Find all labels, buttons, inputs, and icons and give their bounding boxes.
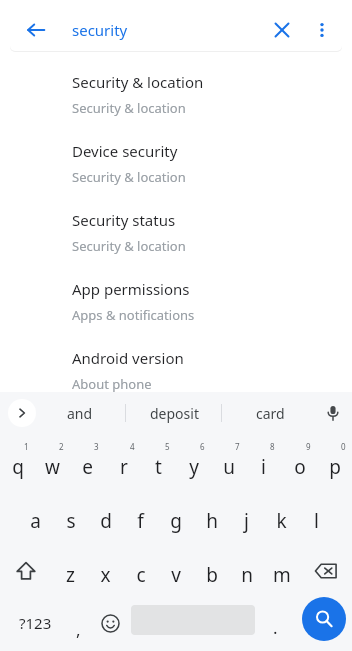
staticText: Apps & notifications [72, 306, 195, 324]
staticText: v [171, 562, 181, 588]
staticText: e [82, 454, 93, 480]
staticText: i [261, 454, 266, 480]
staticText: s [66, 508, 76, 534]
button[interactable]: 8 [246, 438, 281, 488]
button[interactable]: Android version [0, 338, 352, 407]
button[interactable]: Voice input [314, 392, 352, 434]
button[interactable]: 7 [211, 438, 246, 488]
staticText: and [67, 404, 93, 423]
staticText: f [137, 508, 144, 534]
button[interactable]: 1 [0, 438, 35, 488]
button[interactable]: Navigate up [14, 9, 58, 51]
staticText: ?123 [19, 613, 52, 633]
staticText: Device security [72, 141, 178, 161]
button[interactable]: v [158, 546, 193, 596]
button[interactable]: n [229, 546, 264, 596]
button[interactable]: s [53, 492, 88, 542]
button[interactable]: b [194, 546, 229, 596]
staticText: g [170, 508, 182, 534]
staticText: Security & location [72, 168, 186, 186]
staticText: App permissions [72, 279, 190, 299]
staticText: w [45, 454, 60, 480]
staticText: p [329, 454, 341, 480]
button[interactable]: Shift [2, 546, 50, 596]
staticText: r [120, 454, 128, 480]
button[interactable]: Period [258, 599, 292, 647]
button[interactable]: x [88, 546, 123, 596]
button[interactable]: Clear search [260, 9, 304, 51]
button[interactable]: c [123, 546, 158, 596]
button[interactable]: j [229, 492, 264, 542]
staticText: Security status [72, 210, 176, 230]
button[interactable]: card [226, 392, 314, 434]
staticText: Security & location [72, 99, 186, 117]
staticText: Security & location [72, 72, 204, 92]
button[interactable]: 9 [282, 438, 317, 488]
staticText: 7 [235, 441, 240, 452]
staticText: Security & location [72, 237, 186, 255]
staticText: x [100, 562, 111, 588]
staticText: 6 [200, 441, 205, 452]
staticText: a [30, 508, 41, 534]
button[interactable]: ?123 [6, 599, 64, 647]
staticText: . [273, 616, 278, 639]
staticText: security [72, 20, 128, 40]
staticText: Android version [72, 348, 184, 368]
staticText: , [76, 618, 81, 641]
button[interactable]: Comma [62, 599, 94, 647]
button[interactable]: l [299, 492, 334, 542]
staticText: z [66, 562, 75, 588]
button[interactable]: Expand suggestions [8, 399, 36, 427]
staticText: 2 [59, 441, 64, 452]
staticText: c [136, 562, 146, 588]
button[interactable]: a [18, 492, 53, 542]
staticText: u [223, 454, 235, 480]
staticText: m [273, 562, 291, 588]
staticText: q [12, 454, 24, 480]
button[interactable]: Delete [302, 546, 350, 596]
button[interactable]: 4 [106, 438, 141, 488]
staticText: l [314, 508, 319, 534]
button[interactable]: Search [302, 597, 346, 641]
staticText: j [244, 508, 249, 534]
button[interactable]: 3 [70, 438, 105, 488]
button[interactable]: g [158, 492, 193, 542]
button[interactable]: Security status [0, 200, 352, 269]
button[interactable]: deposit [130, 392, 218, 434]
staticText: d [100, 508, 112, 534]
button[interactable]: k [264, 492, 299, 542]
button[interactable]: m [264, 546, 299, 596]
button[interactable]: More options [302, 9, 342, 51]
staticText: k [276, 508, 287, 534]
staticText: n [241, 562, 253, 588]
button[interactable]: 0 [317, 438, 352, 488]
button[interactable]: h [194, 492, 229, 542]
staticText: 4 [130, 441, 135, 452]
staticText: card [256, 404, 285, 423]
button[interactable]: 2 [35, 438, 70, 488]
staticText: 5 [165, 441, 170, 452]
staticText: h [206, 508, 218, 534]
button[interactable]: z [53, 546, 88, 596]
staticText: About phone [72, 375, 152, 393]
staticText: 3 [94, 441, 99, 452]
staticText: 8 [270, 441, 275, 452]
button[interactable]: and [36, 392, 124, 434]
staticText: deposit [150, 404, 199, 423]
staticText: b [206, 562, 218, 588]
button[interactable]: Emoji [92, 599, 128, 647]
button[interactable]: 5 [141, 438, 176, 488]
staticText: o [294, 454, 306, 480]
button[interactable]: d [88, 492, 123, 542]
button[interactable]: App permissions [0, 269, 352, 338]
staticText: 1 [24, 441, 29, 452]
staticText: 0 [341, 441, 346, 452]
staticText: 9 [306, 441, 311, 452]
button[interactable]: Security & location [0, 62, 352, 131]
button[interactable]: Device security [0, 131, 352, 200]
button[interactable]: 6 [176, 438, 211, 488]
button[interactable]: f [123, 492, 158, 542]
staticText: y [189, 454, 199, 480]
staticText: t [155, 454, 162, 480]
